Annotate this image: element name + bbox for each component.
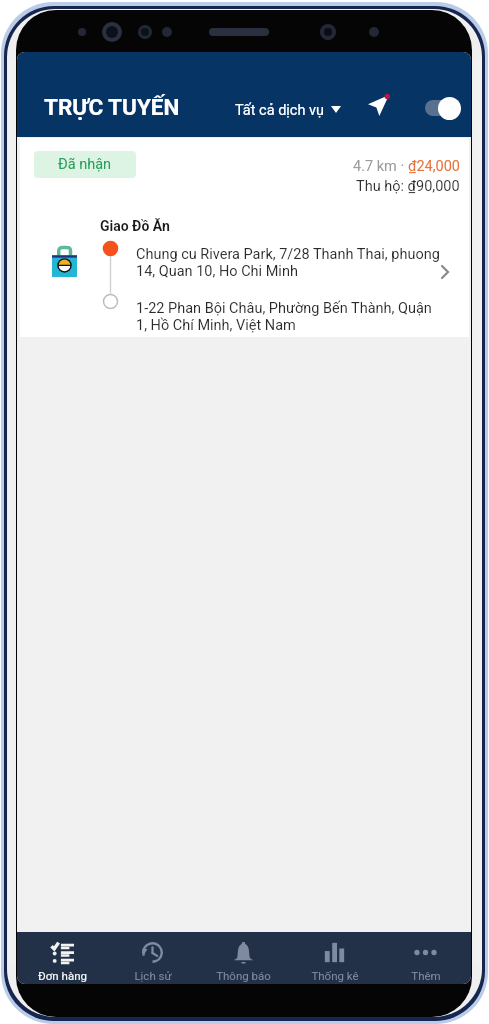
staticText: Tất cả dịch vụ [235,102,325,119]
button[interactable]: Thống kê [289,932,380,984]
staticText: Thu hộ: ₫90,000 [356,178,460,195]
button[interactable]: Lịch sử [107,932,198,984]
staticText: Thống kê [311,969,359,982]
staticText: 4.7 km · [353,158,408,175]
button[interactable]: Tất cả dịch vụ [233,98,343,123]
staticText: Lịch sử [134,969,172,982]
staticText: Thông báo [216,969,271,982]
button[interactable]: Online status toggle [425,95,461,121]
staticText: TRỰC TUYẾN [44,94,180,120]
button[interactable]: Đã nhận [20,138,469,337]
staticText: ₫24,000 [408,158,460,175]
staticText: Thêm [411,969,441,982]
staticText: Giao Đồ Ăn [100,218,170,234]
staticText: Chung cu Rivera Park, 7/28 Thanh Thai, p… [136,246,440,280]
staticText: Đơn hàng [38,969,87,982]
staticText: 1-22 Phan Bội Châu, Phường Bến Thành, Qu… [136,300,440,334]
button[interactable]: Send location [363,90,393,120]
staticText: Đã nhận [58,156,112,173]
button[interactable]: Thông báo [198,932,289,984]
button[interactable]: Đơn hàng [17,932,107,984]
button[interactable]: Thêm [380,932,471,984]
